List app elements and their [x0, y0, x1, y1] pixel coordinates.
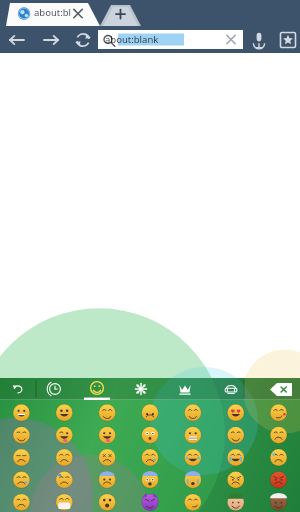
- button[interactable]: Emoji 25: [128, 466, 171, 488]
- button[interactable]: Emoji 29: [0, 488, 42, 510]
- staticText: about:blank: [105, 33, 159, 46]
- button[interactable]: Emoji 5: [171, 400, 214, 422]
- button[interactable]: Emoji 28: [257, 466, 300, 488]
- button[interactable]: Forward: [34, 26, 68, 53]
- button[interactable]: Emoji 6: [214, 400, 257, 422]
- button[interactable]: Bookmarks: [275, 26, 300, 53]
- button[interactable]: Voice search: [243, 26, 275, 53]
- button[interactable]: Emoji 13: [214, 422, 257, 444]
- button[interactable]: Emoji 4: [128, 400, 171, 422]
- button[interactable]: Emoji 27: [214, 466, 257, 488]
- button[interactable]: Emoji 19: [171, 444, 214, 466]
- button[interactable]: Emoji 18: [128, 444, 171, 466]
- button[interactable]: Emoji 34: [214, 488, 257, 510]
- button[interactable]: Emoji 9: [42, 422, 85, 444]
- button[interactable]: about:blank: [98, 30, 243, 49]
- button[interactable]: Emoji 8: [0, 422, 42, 444]
- button[interactable]: Emoji 23: [42, 466, 85, 488]
- button[interactable]: Emoji 17: [85, 444, 128, 466]
- button[interactable]: Backspace: [262, 378, 300, 400]
- button[interactable]: Emoji 33: [171, 488, 214, 510]
- button[interactable]: Emoji 2: [42, 400, 85, 422]
- button[interactable]: Emoji 20: [214, 444, 257, 466]
- button[interactable]: Recent emoji: [36, 378, 74, 400]
- button[interactable]: Emoji 12: [171, 422, 214, 444]
- button[interactable]: Emoji 21: [257, 444, 300, 466]
- button[interactable]: Emoji 16: [42, 444, 85, 466]
- button[interactable]: Emoji 7: [257, 400, 300, 422]
- button[interactable]: Emoji 22: [0, 466, 42, 488]
- button[interactable]: Emoji 26: [171, 466, 214, 488]
- button[interactable]: Emoji 35: [257, 488, 300, 510]
- button[interactable]: Emoji 14: [257, 422, 300, 444]
- button[interactable]: Smileys: [74, 378, 120, 400]
- button[interactable]: Reload: [68, 26, 98, 53]
- button[interactable]: Emoji 15: [0, 444, 42, 466]
- button[interactable]: Emoji 1: [0, 400, 42, 422]
- staticText: about:bl…: [34, 6, 78, 19]
- button[interactable]: Back: [0, 26, 34, 53]
- button[interactable]: Nature: [120, 378, 162, 400]
- button[interactable]: Emoji 32: [128, 488, 171, 510]
- button[interactable]: Emoji 10: [85, 422, 128, 444]
- button[interactable]: Emoji 11: [128, 422, 171, 444]
- button[interactable]: Objects: [162, 378, 208, 400]
- button[interactable]: Emoji 24: [85, 466, 128, 488]
- button[interactable]: Undo: [0, 378, 36, 400]
- button[interactable]: Travel: [208, 378, 254, 400]
- button[interactable]: Emoji 30: [42, 488, 85, 510]
- button[interactable]: Emoji 31: [85, 488, 128, 510]
- button[interactable]: Emoji 3: [85, 400, 128, 422]
